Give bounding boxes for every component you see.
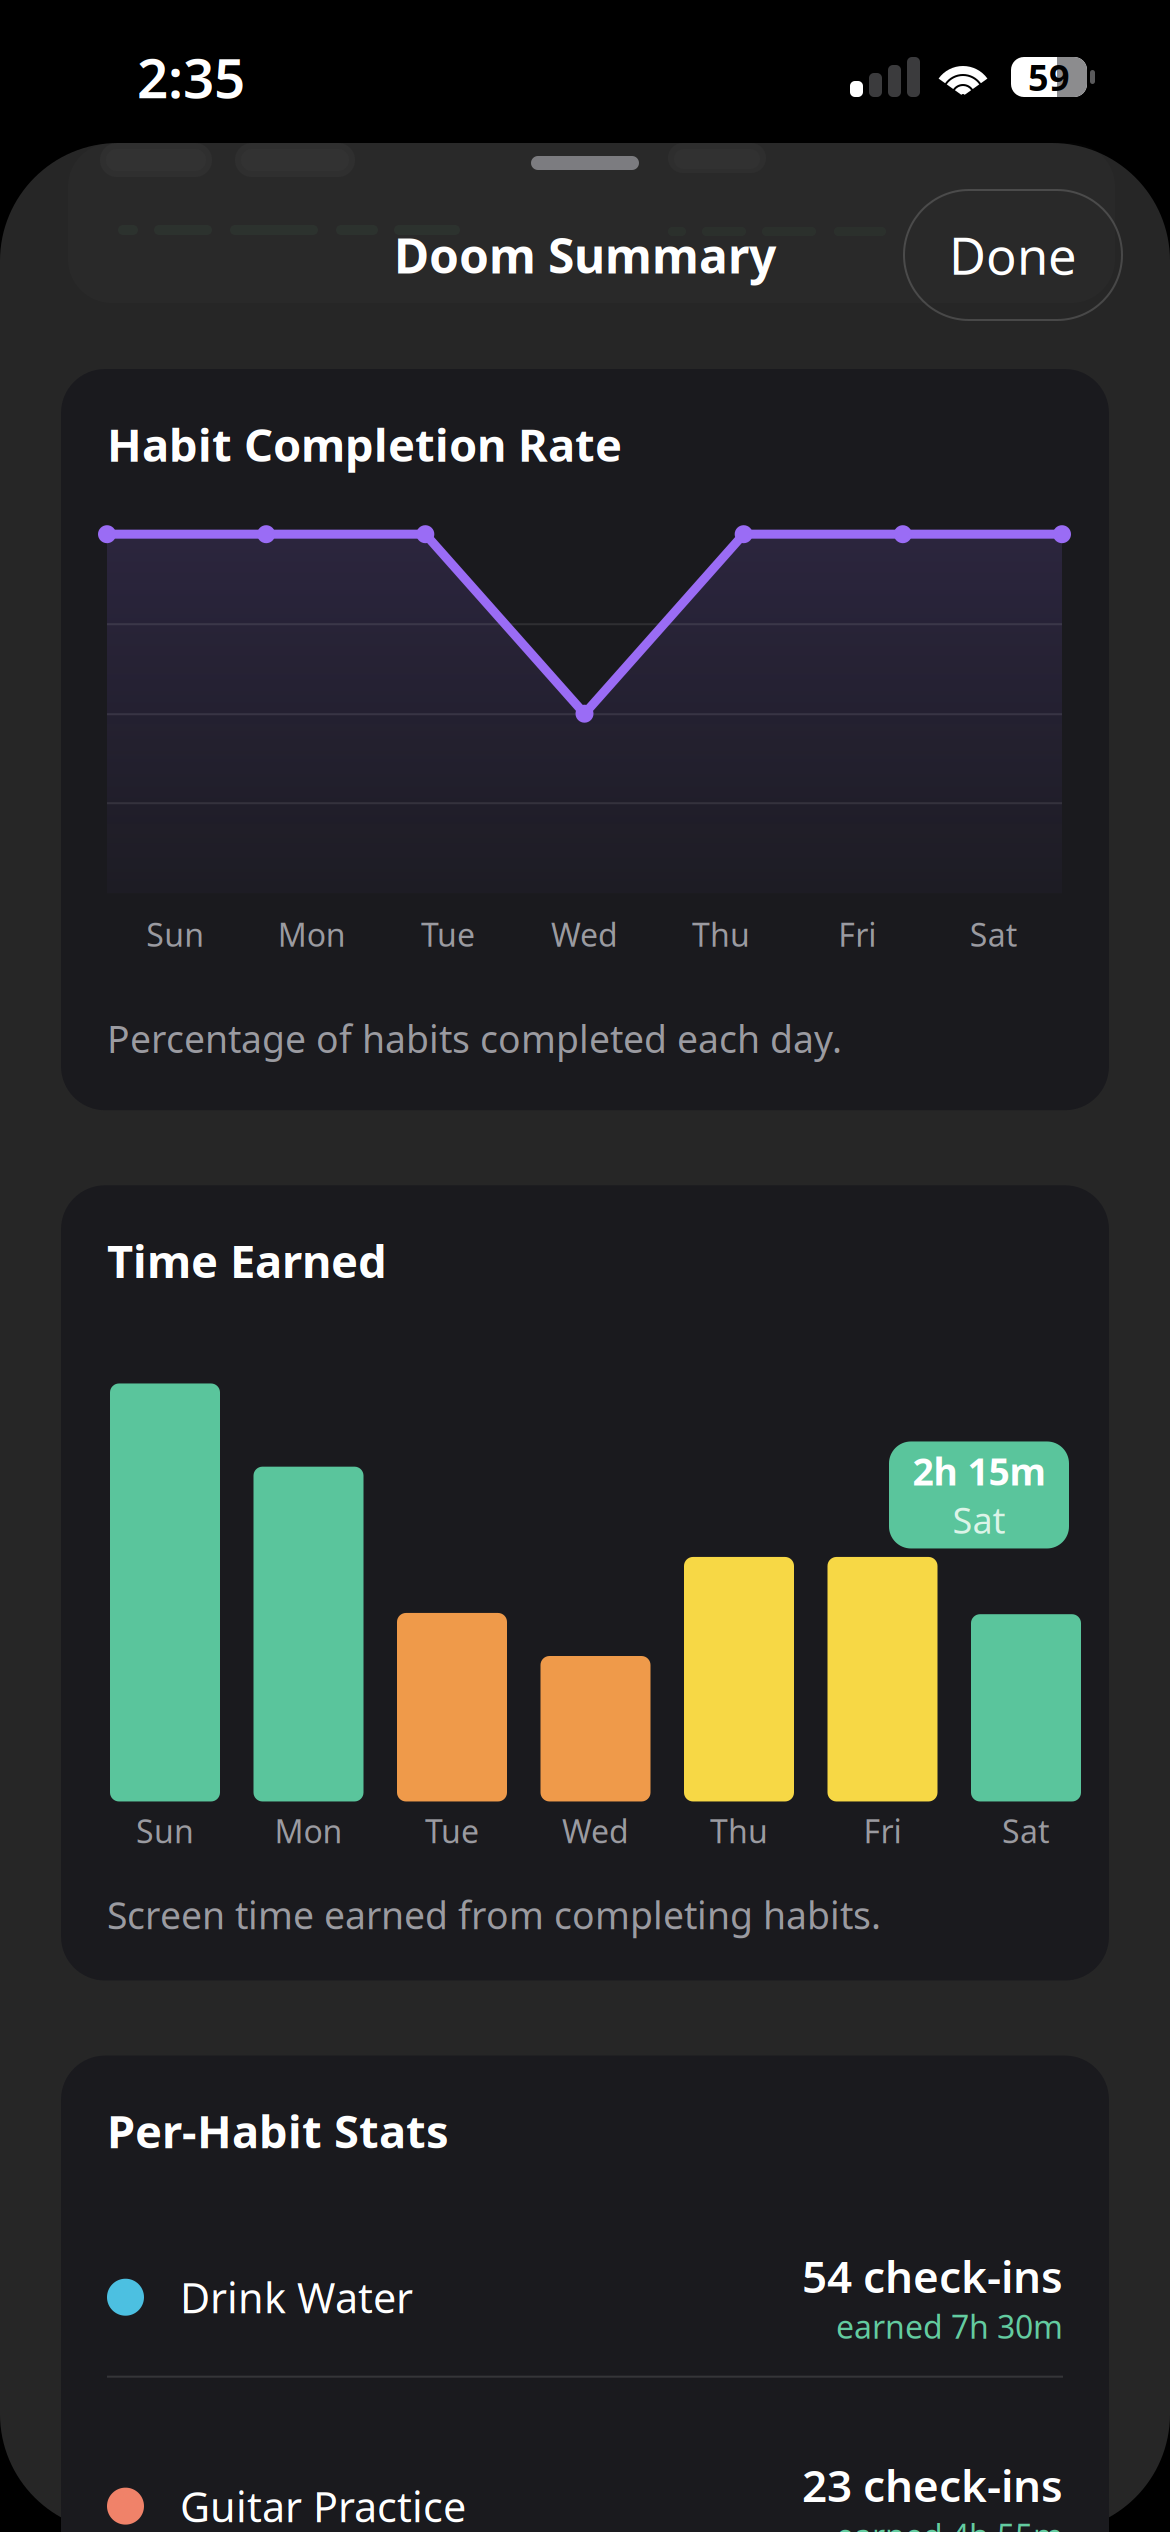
staticText: Sun — [136, 1809, 194, 1852]
staticText: 2:35 — [137, 41, 245, 113]
staticText: Done — [949, 221, 1077, 289]
staticText: Per-Habit Stats — [107, 2100, 449, 2161]
staticText: Thu — [692, 913, 750, 956]
staticText: Sat — [952, 1496, 1005, 1544]
staticText: 23 check-ins — [802, 2456, 1063, 2514]
staticText: Habit Completion Rate — [107, 414, 622, 474]
staticText: Wed — [562, 1809, 629, 1852]
staticText: Mon — [278, 913, 346, 956]
staticText: Screen time earned from completing habit… — [107, 1890, 881, 1940]
staticText: Doom Summary — [394, 223, 776, 287]
staticText: Tue — [425, 1809, 479, 1852]
staticText: Fri — [838, 913, 876, 956]
staticText: Sun — [146, 913, 204, 956]
staticText: earned 7h 30m — [836, 2305, 1063, 2348]
staticText: Fri — [863, 1809, 901, 1852]
staticText: Mon — [274, 1809, 342, 1852]
staticText: Time Earned — [107, 1230, 387, 1290]
staticText: 59 — [1028, 53, 1070, 101]
staticText: earned 4h 55m — [836, 2514, 1063, 2532]
staticText: Drink Water — [180, 2270, 413, 2325]
staticText: 54 check-ins — [802, 2247, 1063, 2305]
staticText: Percentage of habits completed each day. — [107, 1014, 842, 1063]
staticText: 2h 15m — [912, 1446, 1045, 1496]
staticText: Tue — [421, 913, 475, 956]
staticText: Guitar Practice — [180, 2479, 466, 2532]
staticText: Wed — [551, 913, 618, 956]
staticText: Sat — [970, 913, 1018, 956]
button[interactable]: Done — [904, 190, 1122, 320]
staticText: Sat — [1002, 1809, 1050, 1852]
staticText: Thu — [710, 1809, 768, 1852]
